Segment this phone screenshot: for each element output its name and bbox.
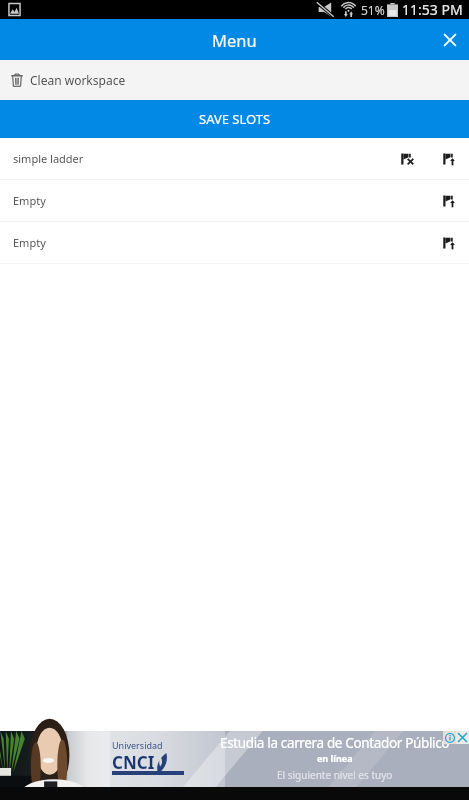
button[interactable]: Empty [0,222,469,263]
button[interactable]: Delete slot [390,142,424,176]
button[interactable]: Empty [0,180,469,221]
button[interactable]: Ad information [443,731,456,744]
button[interactable]: SAVE SLOTS [0,100,469,138]
button[interactable]: Close [429,19,469,60]
staticText: 51% [361,2,385,18]
staticText: Menu [212,29,257,51]
button[interactable]: Close ad [456,731,469,744]
staticText: El siguiente nivel es tuyo [277,768,393,782]
staticText: Empty [13,235,46,250]
staticText: Estudia la carrera de Contador Público [220,734,450,752]
staticText: Clean workspace [30,72,126,88]
staticText: Empty [13,193,46,208]
button[interactable]: Clean workspace [0,60,469,100]
staticText: simple ladder [13,151,84,166]
staticText: 11:53 PM [402,0,463,19]
button[interactable]: Save to slot [432,226,466,260]
button[interactable]: simple ladder [0,138,469,179]
button[interactable]: Save to slot [432,184,466,218]
staticText: Universidad [112,739,163,751]
staticText: SAVE SLOTS [199,110,271,128]
staticText: en línea [317,752,353,764]
staticText: CNCI [112,751,155,774]
button[interactable]: Save to slot [432,142,466,176]
